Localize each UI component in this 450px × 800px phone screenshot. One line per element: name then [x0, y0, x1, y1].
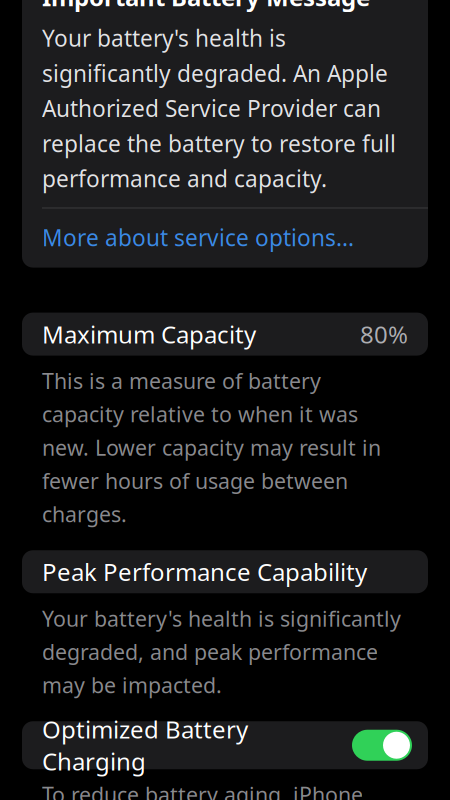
staticText: More about service options... [42, 222, 354, 253]
button[interactable]: Peak Performance Capability [0, 550, 450, 593]
button[interactable]: Maximum Capacity [0, 313, 450, 356]
staticText: Important Battery Message [42, 0, 370, 13]
staticText: Maximum Capacity [42, 318, 256, 350]
staticText: Peak Performance Capability [42, 556, 367, 588]
staticText: To reduce battery aging, iPhone learns f… [42, 780, 406, 800]
staticText: 80% [360, 318, 408, 350]
staticText: Your battery's health is significantly d… [42, 23, 396, 193]
staticText: This is a measure of battery capacity re… [42, 367, 381, 528]
staticText: Optimized Battery Charging [42, 713, 248, 777]
button[interactable]: Optimized Battery Charging [0, 721, 450, 769]
staticText: Your battery's health is significantly d… [42, 604, 401, 699]
button[interactable]: More about service options... [22, 208, 428, 268]
